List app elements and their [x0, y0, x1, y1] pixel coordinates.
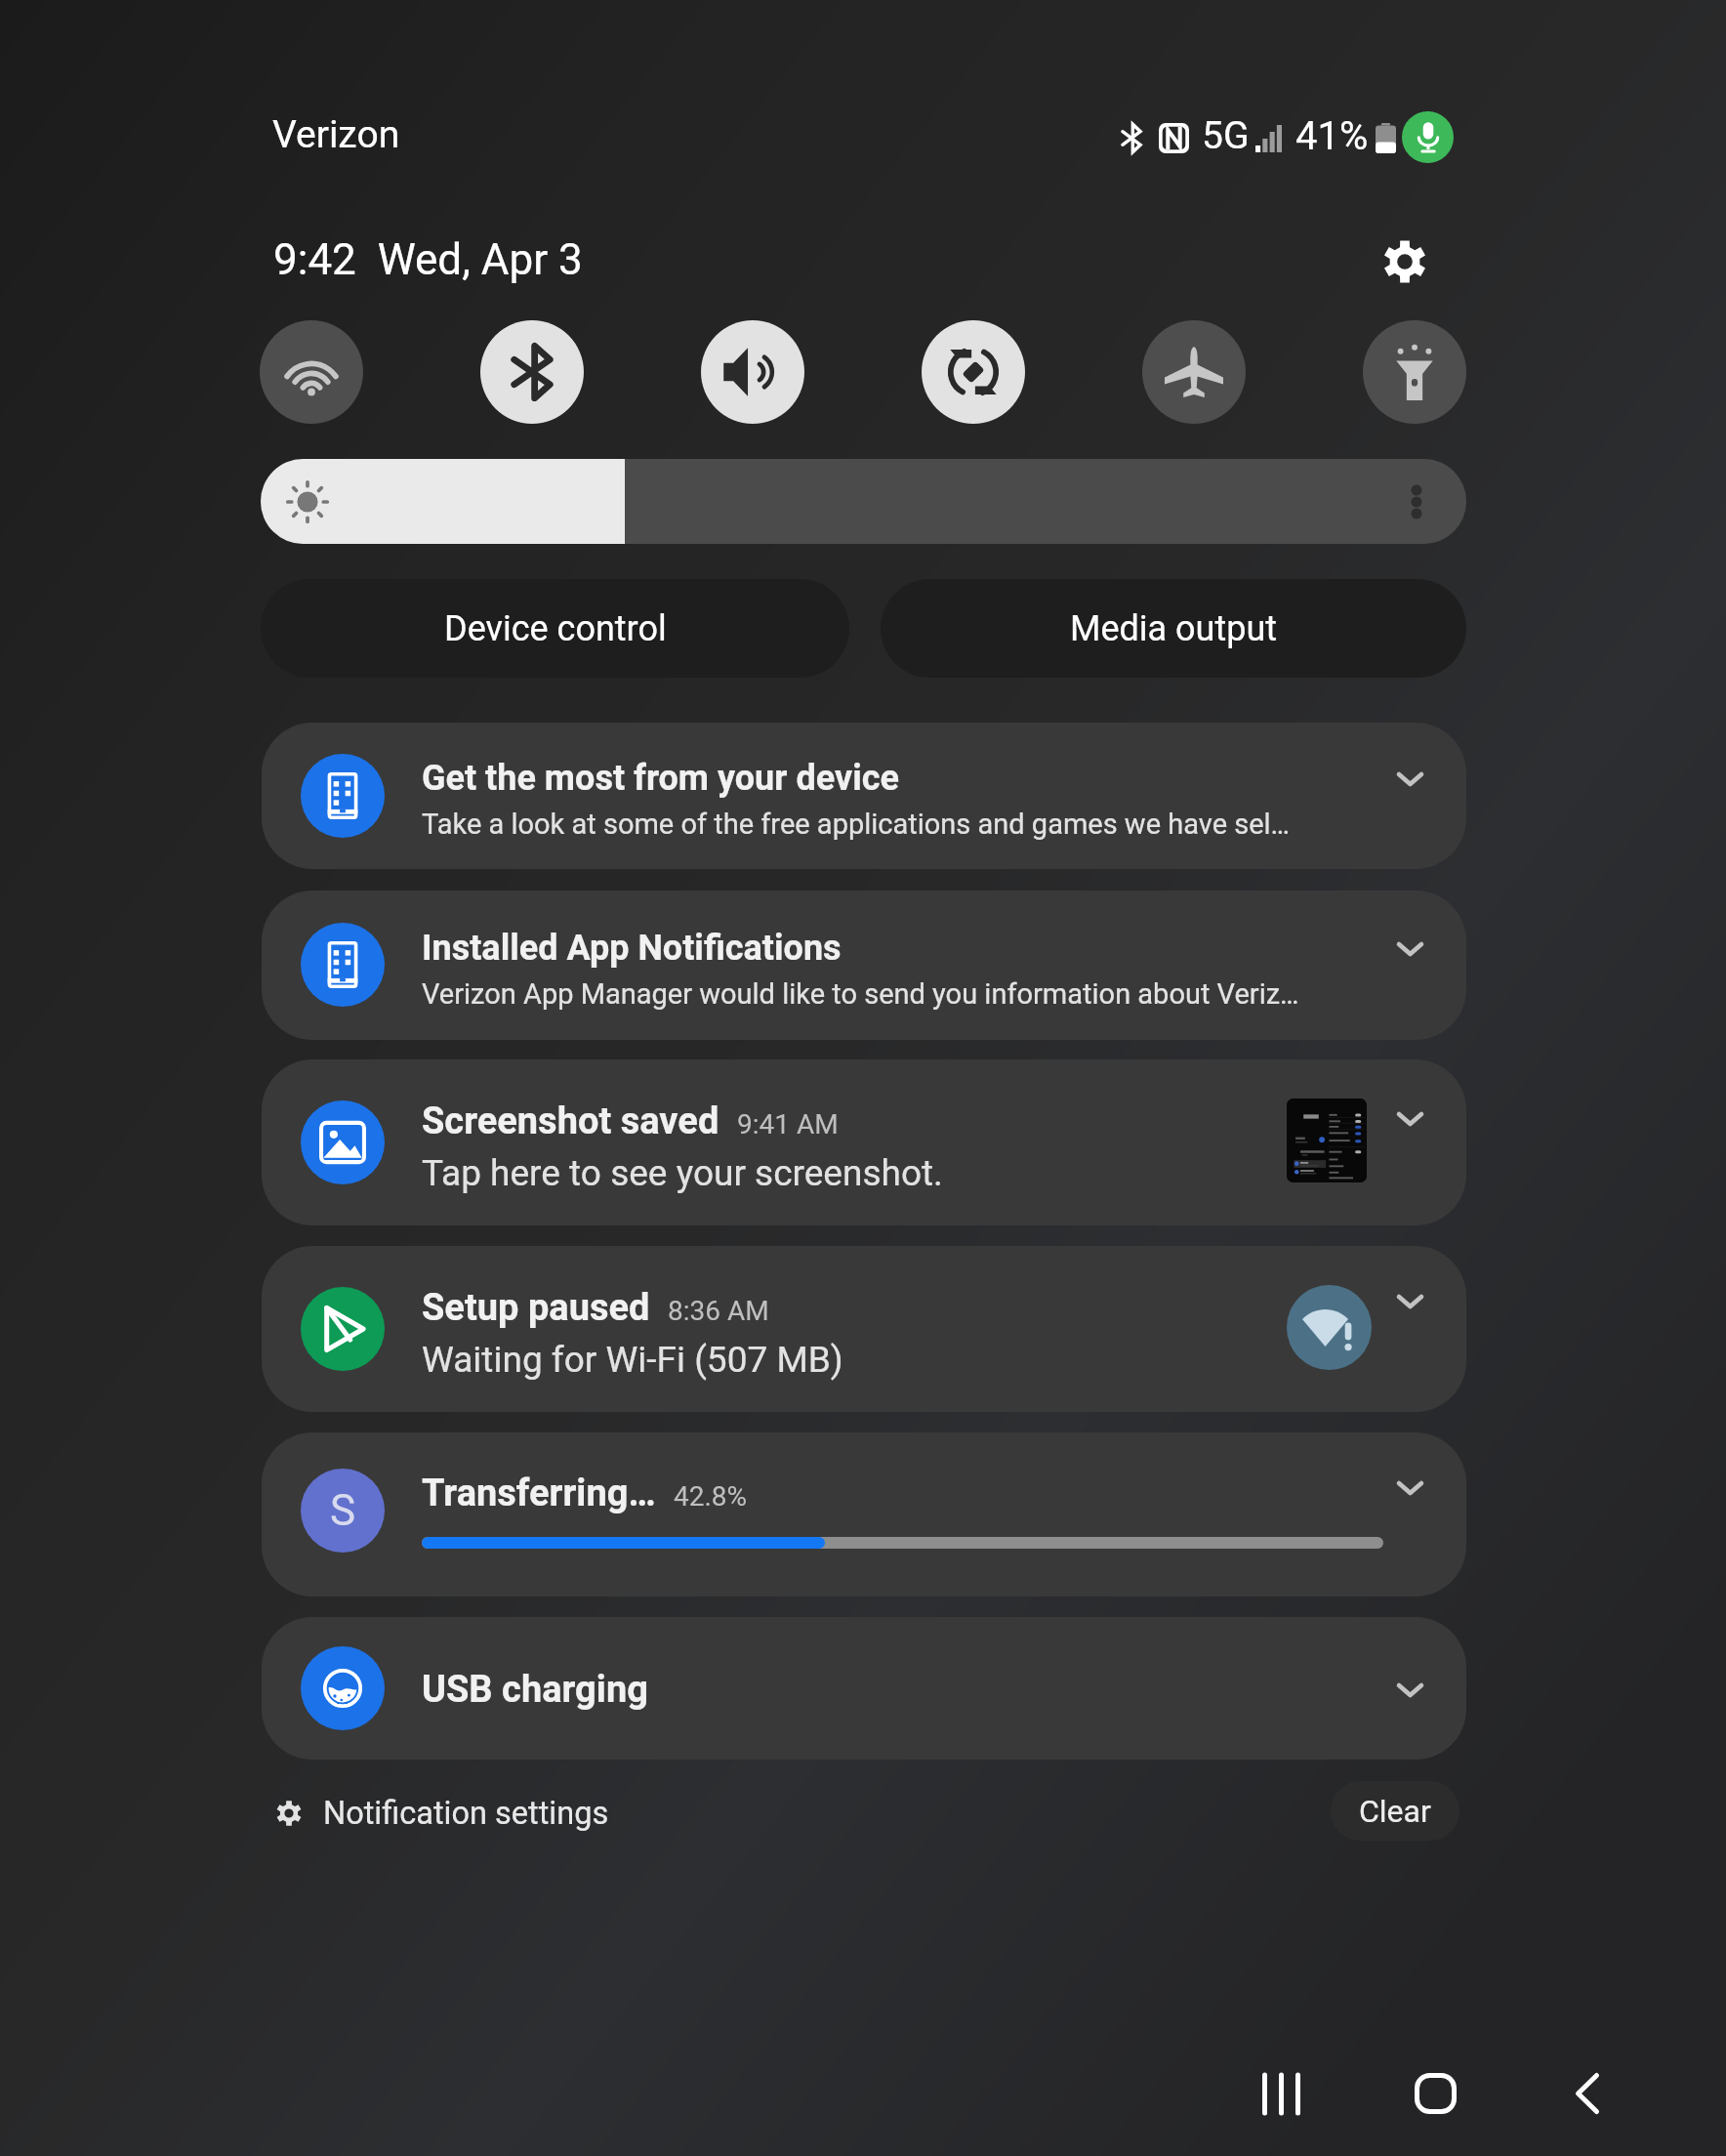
button[interactable]: Flashlight — [1363, 320, 1466, 424]
button[interactable]: Device control — [261, 579, 849, 678]
button[interactable]: Auto rotate — [922, 320, 1025, 424]
staticText: Installed App Notifications — [422, 928, 842, 969]
staticText: Device control — [444, 608, 667, 649]
button[interactable]: Brightness — [261, 459, 1466, 544]
button[interactable]: USB charging — [262, 1617, 1466, 1760]
staticText: Take a look at some of the free applicat… — [422, 808, 1302, 841]
staticText: Setup paused — [422, 1286, 650, 1330]
button[interactable]: Back — [1524, 2030, 1651, 2156]
staticText: 42.8% — [674, 1480, 748, 1513]
button[interactable]: Expand — [1375, 1655, 1445, 1725]
staticText: Transferring… — [422, 1472, 656, 1515]
staticText: Notification settings — [323, 1795, 609, 1832]
staticText: Waiting for Wi-Fi (507 MB) — [422, 1339, 843, 1381]
staticText: Verizon App Manager would like to send y… — [422, 977, 1302, 1011]
button[interactable]: Setup paused — [262, 1246, 1466, 1412]
staticText: 9:42 Wed, Apr 3 — [273, 234, 583, 285]
button[interactable]: Media output — [881, 579, 1466, 678]
button[interactable]: Settings — [1370, 227, 1440, 297]
button[interactable]: Screenshot saved — [262, 1059, 1466, 1225]
button[interactable]: Airplane mode — [1142, 320, 1246, 424]
button[interactable]: Expand — [1375, 1453, 1445, 1523]
button[interactable]: Expand — [1375, 914, 1445, 984]
button[interactable]: Notification settings — [276, 1785, 609, 1842]
button[interactable]: Installed App Notifications — [262, 891, 1466, 1040]
button[interactable]: Wi-Fi — [260, 320, 363, 424]
button[interactable]: Home — [1372, 2030, 1499, 2156]
staticText: Screenshot saved — [422, 1099, 719, 1143]
staticText: Tap here to see your screenshot. — [422, 1152, 943, 1194]
staticText: S — [330, 1485, 356, 1536]
staticText: 9:41 AM — [737, 1108, 839, 1140]
staticText: 41% — [1295, 113, 1369, 159]
button[interactable]: Expand — [1375, 1084, 1445, 1154]
button[interactable]: S — [262, 1432, 1466, 1596]
button[interactable]: Expand — [1375, 1266, 1445, 1337]
staticText: Clear — [1359, 1793, 1431, 1830]
button[interactable]: Recents — [1217, 2030, 1344, 2156]
button[interactable]: Sound — [701, 320, 804, 424]
staticText: Verizon — [272, 112, 400, 157]
staticText: Media output — [1070, 608, 1278, 649]
staticText: 5G — [1202, 113, 1250, 158]
other: Microphone in use — [1402, 111, 1454, 163]
button[interactable]: Bluetooth — [480, 320, 584, 424]
button[interactable]: Expand — [1375, 744, 1445, 814]
button[interactable]: Clear — [1331, 1781, 1459, 1841]
staticText: 8:36 AM — [668, 1295, 769, 1327]
staticText: USB charging — [422, 1668, 648, 1712]
button[interactable]: Get the most from your device — [262, 723, 1466, 869]
staticText: Get the most from your device — [422, 758, 899, 799]
